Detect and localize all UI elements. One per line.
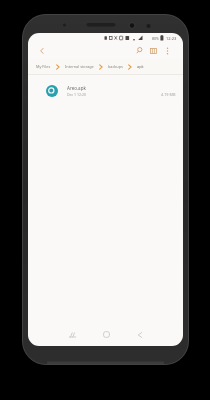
button[interactable]: [133, 44, 146, 57]
staticText: 4.19 MB: [161, 92, 176, 97]
button[interactable]: [55, 329, 89, 346]
button[interactable]: [147, 44, 160, 57]
button[interactable]: backups: [108, 64, 123, 69]
staticText: Areo.apk: [67, 85, 86, 91]
button[interactable]: [123, 329, 157, 346]
staticText: 12:23: [166, 36, 177, 41]
button[interactable]: apk: [137, 64, 144, 69]
button[interactable]: [89, 329, 123, 346]
staticText: 80%: [152, 36, 159, 41]
button[interactable]: [35, 44, 48, 57]
button[interactable]: Areo.apk: [28, 75, 183, 107]
button[interactable]: Internal storage: [65, 64, 94, 69]
button[interactable]: My Files: [36, 64, 51, 69]
button[interactable]: [161, 44, 174, 57]
staticText: Dec 1 12:20: [67, 92, 86, 97]
